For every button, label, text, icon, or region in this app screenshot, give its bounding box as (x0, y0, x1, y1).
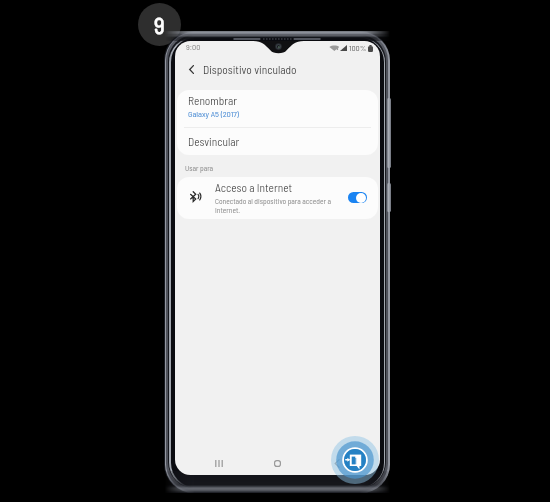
staticText: 9:00 (186, 42, 201, 52)
staticText: Acceso a Internet (215, 181, 293, 195)
staticText: Galaxy A5 (2017) (188, 109, 239, 119)
button[interactable]: Acceso a Internet (177, 177, 378, 219)
staticText: 100% (349, 43, 367, 53)
button[interactable]: Back (328, 455, 345, 472)
button[interactable]: Exit (331, 436, 379, 484)
button[interactable]: Back (183, 61, 200, 78)
button[interactable]: Home (269, 455, 286, 472)
staticText: Usar para (185, 163, 214, 172)
staticText: Dispositivo vinculado (203, 63, 297, 77)
button[interactable]: Internet access toggle, on (348, 192, 367, 203)
button[interactable]: Renombrar (177, 90, 378, 127)
staticText: 9 (154, 11, 165, 39)
button[interactable]: Desvincular (177, 128, 378, 155)
button[interactable]: Recents (210, 455, 227, 472)
staticText: Renombrar (188, 94, 238, 108)
staticText: Desvincular (188, 135, 240, 149)
staticText: Conectado al dispositivo para acceder a … (215, 196, 342, 214)
